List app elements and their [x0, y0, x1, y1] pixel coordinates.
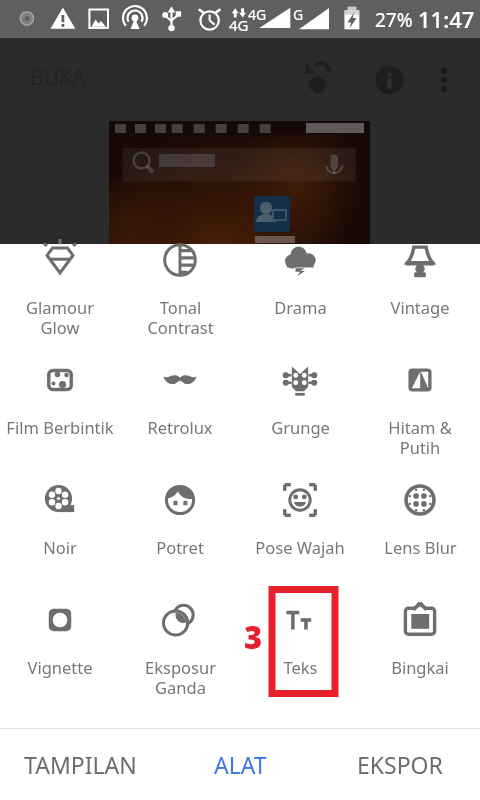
button[interactable]: Info — [374, 63, 405, 94]
button[interactable]: Film Berbintik — [0, 336, 120, 456]
staticText: Bingkai — [391, 656, 449, 678]
button[interactable]: Vignette — [0, 576, 120, 696]
staticText: Potret — [156, 536, 204, 558]
button[interactable]: Revert — [301, 59, 333, 91]
button[interactable]: Pose Wajah — [240, 456, 360, 576]
button[interactable]: Potret — [120, 456, 240, 576]
button[interactable]: TAMPILAN — [0, 729, 160, 800]
staticText: Retrolux — [147, 416, 213, 438]
button[interactable]: Vintage — [360, 216, 480, 336]
staticText: 4G — [229, 15, 249, 35]
staticText: Noir — [43, 536, 77, 558]
button[interactable]: Eksposur Ganda — [120, 576, 240, 696]
staticText: Tonal Contrast — [147, 296, 214, 336]
button[interactable]: Tonal Contrast — [120, 216, 240, 336]
staticText: 3 — [244, 616, 263, 658]
staticText: Film Berbintik — [6, 416, 114, 438]
staticText: Vignette — [27, 656, 93, 678]
staticText: Drama — [274, 296, 327, 318]
staticText: Pose Wajah — [255, 536, 345, 558]
staticText: Eksposur Ganda — [145, 656, 216, 696]
staticText: 11:47 — [418, 4, 475, 34]
staticText: EKSPOR — [357, 749, 443, 780]
button[interactable]: EKSPOR — [320, 729, 480, 800]
staticText: Teks — [283, 656, 318, 678]
staticText: G — [293, 5, 304, 24]
staticText: Vintage — [390, 296, 450, 318]
staticText: 4G — [248, 5, 267, 24]
staticText: ALAT — [214, 749, 267, 780]
staticText: Hitam & Putih — [388, 416, 452, 456]
staticText: Glamour Glow — [26, 296, 94, 336]
button[interactable]: Lens Blur — [360, 456, 480, 576]
staticText: Lens Blur — [384, 536, 457, 558]
button[interactable]: Hitam & Putih — [360, 336, 480, 456]
button[interactable]: Noir — [0, 456, 120, 576]
button[interactable]: Retrolux — [120, 336, 240, 456]
button[interactable]: ALAT — [160, 729, 320, 800]
button[interactable]: Glamour Glow — [0, 216, 120, 336]
staticText: 27% — [375, 7, 413, 33]
button[interactable]: Teks — [240, 576, 360, 696]
button[interactable]: Drama — [240, 216, 360, 336]
button[interactable]: More options — [430, 62, 458, 90]
staticText: TAMPILAN — [24, 749, 137, 780]
button[interactable]: Grunge — [240, 336, 360, 456]
staticText: Grunge — [271, 416, 330, 438]
button[interactable]: Bingkai — [360, 576, 480, 696]
